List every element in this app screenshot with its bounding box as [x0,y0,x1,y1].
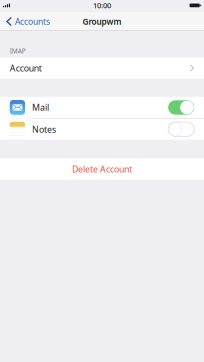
button[interactable]: Delete Account [0,158,204,180]
button[interactable]: Accounts [0,12,54,31]
staticText: Notes [32,123,56,135]
button[interactable]: Account [0,57,204,79]
staticText: Accounts [15,16,50,27]
staticText: 10:00 [93,0,111,10]
button[interactable]: Notes [0,119,204,140]
staticText: Groupwm [82,16,121,27]
staticText: IMAP [10,46,26,55]
staticText: Delete Account [72,163,132,175]
staticText: Account [10,62,42,74]
button[interactable]: Mail [0,97,204,118]
staticText: Mail [32,101,49,113]
